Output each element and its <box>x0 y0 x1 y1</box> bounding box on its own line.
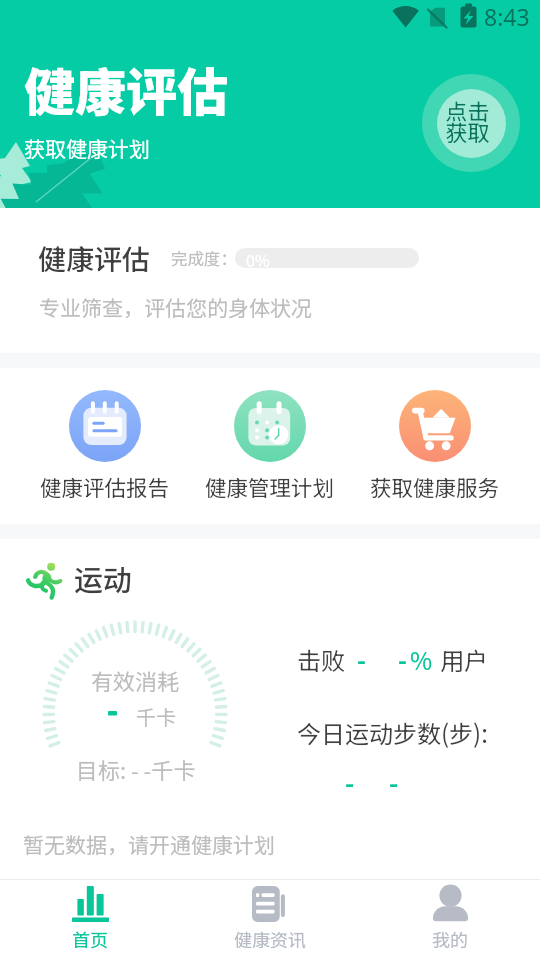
staticText: 获取健康计划 <box>24 133 150 163</box>
staticText: 今日运动步数(步): <box>297 715 488 750</box>
staticText: 健康评估 <box>38 238 151 279</box>
staticText: 8:43 <box>484 1 530 32</box>
staticText: 运动 <box>74 557 133 599</box>
staticText: % <box>410 642 433 677</box>
staticText: - <box>398 642 407 677</box>
staticText: 暂无数据，请开通健康计划 <box>23 829 275 859</box>
staticText: - <box>357 642 366 677</box>
staticText: 健康评估报告 <box>40 471 170 502</box>
button[interactable]: 运动 <box>14 551 141 605</box>
button[interactable]: 健康评估报告 <box>36 390 174 502</box>
button[interactable]: 首页 <box>30 880 150 952</box>
staticText: 我的 <box>432 926 468 952</box>
staticText: - <box>345 764 355 800</box>
staticText: 获取健康服务 <box>370 471 500 502</box>
button[interactable]: 我的 <box>390 880 510 952</box>
staticText: 健康资讯 <box>234 926 306 952</box>
button[interactable]: 点击获取 <box>422 74 520 172</box>
staticText: 专业筛查，评估您的身体状况 <box>39 292 312 322</box>
staticText: - <box>389 764 399 800</box>
staticText: 千卡 <box>136 702 176 731</box>
button[interactable]: 健康资讯 <box>210 880 330 952</box>
staticText: 健康评估 <box>24 52 229 126</box>
staticText: 有效消耗 <box>91 664 180 696</box>
staticText: 完成度： <box>171 246 237 270</box>
staticText: 用户 <box>440 642 488 677</box>
staticText: 目标: - -千卡 <box>76 753 196 785</box>
staticText: 0% <box>246 248 270 268</box>
button[interactable]: 健康管理计划 <box>201 390 339 502</box>
staticText: 击败 <box>297 642 345 677</box>
staticText: 点击 获取 <box>445 94 490 147</box>
staticText: 健康管理计划 <box>205 471 335 502</box>
button[interactable]: 获取健康服务 <box>366 390 504 502</box>
button[interactable]: 健康评估 <box>0 208 540 353</box>
staticText: 首页 <box>72 926 108 952</box>
button[interactable]: 暂无数据，请开通健康计划 <box>0 821 540 859</box>
